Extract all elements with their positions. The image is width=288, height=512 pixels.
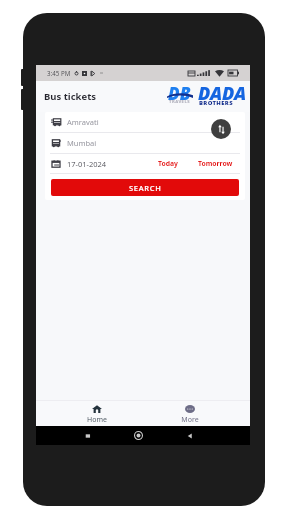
staticText: 3:45 PM xyxy=(47,69,71,77)
staticText: More xyxy=(181,415,199,425)
staticText: DB xyxy=(168,82,191,105)
staticText: Tomorrow xyxy=(198,159,233,168)
button[interactable]: Swap source and destination xyxy=(211,119,231,139)
staticText: TRAVELS xyxy=(169,99,191,105)
button[interactable]: Tomorrow xyxy=(197,157,234,170)
staticText: Home xyxy=(87,415,107,425)
button[interactable]: Home xyxy=(82,404,112,426)
button[interactable]: Today xyxy=(157,157,179,170)
button[interactable]: Mumbai xyxy=(51,133,239,153)
staticText: SEARCH xyxy=(129,183,162,193)
button[interactable]: SEARCH xyxy=(51,179,239,196)
staticText: BROTHERS xyxy=(199,99,233,107)
staticText: DADA xyxy=(198,81,247,104)
button[interactable]: Amravati xyxy=(51,112,239,132)
staticText: Bus tickets xyxy=(44,90,97,103)
staticText: Today xyxy=(158,159,178,168)
staticText: Amravati xyxy=(67,117,99,127)
button[interactable]: More xyxy=(175,404,205,426)
staticText: Mumbai xyxy=(67,138,97,148)
staticText: 17-01-2024 xyxy=(67,159,107,169)
